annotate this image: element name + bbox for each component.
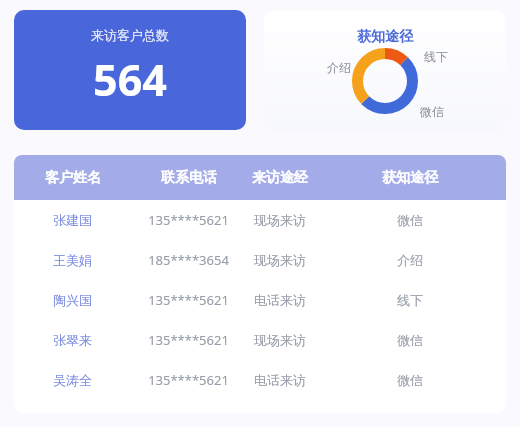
staticText: 现场来访 [254, 252, 306, 268]
staticText: 介绍 [327, 60, 351, 75]
other: 获知途径 donut chart [352, 48, 418, 114]
staticText: 现场来访 [254, 332, 306, 348]
staticText: 联系电话 [161, 169, 217, 187]
staticText: 微信 [397, 372, 423, 388]
button[interactable]: 获知途径 [264, 10, 506, 130]
staticText: 135****5621 [148, 371, 229, 389]
button[interactable]: 客户姓名 [14, 155, 506, 200]
button[interactable]: 来访客户总数 [14, 10, 246, 130]
staticText: 135****5621 [148, 211, 229, 229]
staticText: 电话来访 [254, 372, 306, 388]
staticText: 135****5621 [148, 291, 229, 309]
staticText: 微信 [397, 212, 423, 228]
staticText: 来访途经 [252, 169, 308, 187]
staticText: 微信 [420, 104, 444, 119]
staticText: 获知途径 [382, 169, 438, 187]
staticText: 185****3654 [148, 251, 229, 269]
staticText: 陶兴国 [53, 292, 92, 308]
staticText: 微信 [397, 332, 423, 348]
staticText: 564 [93, 50, 167, 109]
button[interactable]: 王美娟 [14, 240, 506, 280]
button[interactable]: 吴涛全 [14, 360, 506, 400]
staticText: 获知途径 [357, 28, 413, 46]
staticText: 现场来访 [254, 212, 306, 228]
staticText: 张建国 [53, 212, 92, 228]
staticText: 135****5621 [148, 331, 229, 349]
staticText: 王美娟 [53, 252, 92, 268]
staticText: 电话来访 [254, 292, 306, 308]
button[interactable]: 陶兴国 [14, 280, 506, 320]
staticText: 吴涛全 [53, 372, 92, 388]
staticText: 客户姓名 [45, 169, 101, 187]
staticText: 来访客户总数 [91, 27, 169, 43]
staticText: 线下 [424, 49, 448, 64]
button[interactable]: 张建国 [14, 200, 506, 240]
button[interactable]: 张翠来 [14, 320, 506, 360]
staticText: 线下 [397, 292, 423, 308]
staticText: 张翠来 [53, 332, 92, 348]
staticText: 介绍 [397, 252, 423, 268]
